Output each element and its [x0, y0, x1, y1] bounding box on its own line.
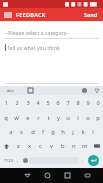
- button[interactable]: Emoji: [21, 153, 29, 168]
- staticText: 4: [36, 99, 40, 107]
- button[interactable]: Comma: [15, 153, 21, 168]
- staticText: u: [66, 114, 70, 122]
- button[interactable]: --Please select a category--: [5, 26, 98, 38]
- button[interactable]: p: [93, 110, 103, 125]
- button[interactable]: x: [24, 139, 35, 153]
- button[interactable]: 7: [63, 95, 73, 110]
- button[interactable]: m: [79, 139, 90, 153]
- staticText: 1: [4, 99, 8, 107]
- button[interactable]: y: [53, 110, 63, 125]
- staticText: j: [72, 128, 74, 136]
- button[interactable]: Home: [37, 168, 57, 183]
- button[interactable]: Open navigation menu: [0, 8, 16, 21]
- button[interactable]: s: [16, 125, 27, 139]
- staticText: ,: [17, 157, 19, 164]
- staticText: 7: [66, 99, 70, 107]
- staticText: Tell us what you think: [7, 44, 60, 51]
- button[interactable]: Recent apps: [57, 168, 77, 183]
- staticText: e: [26, 114, 30, 122]
- staticText: z: [17, 142, 20, 150]
- staticText: --Please select a category--: [5, 29, 70, 36]
- button[interactable]: c: [35, 139, 46, 153]
- staticText: b: [61, 142, 65, 150]
- staticText: .: [82, 157, 84, 164]
- staticText: FEEDBACK: [16, 11, 79, 18]
- staticText: s: [20, 128, 23, 136]
- button[interactable]: Back: [17, 168, 37, 183]
- staticText: 0: [96, 99, 100, 107]
- staticText: h: [61, 128, 65, 136]
- button[interactable]: ?123: [2, 153, 15, 168]
- button[interactable]: k: [78, 125, 88, 139]
- button[interactable]: z: [13, 139, 24, 153]
- staticText: 3: [26, 99, 30, 107]
- staticText: x: [28, 142, 32, 150]
- button[interactable]: Shift: [0, 139, 13, 153]
- button[interactable]: r: [33, 110, 43, 125]
- button[interactable]: a: [5, 125, 16, 139]
- button[interactable]: Switch keyboard: [77, 168, 97, 183]
- staticText: v: [50, 142, 53, 150]
- staticText: 6: [56, 99, 60, 107]
- button[interactable]: 8: [73, 95, 83, 110]
- staticText: f: [42, 128, 44, 136]
- staticText: r: [37, 114, 40, 122]
- button[interactable]: j: [68, 125, 78, 139]
- button[interactable]: Send: [79, 8, 103, 21]
- staticText: 2: [15, 99, 19, 107]
- button[interactable]: d: [27, 125, 38, 139]
- button[interactable]: w: [11, 110, 22, 125]
- staticText: g: [51, 128, 55, 136]
- button[interactable]: u: [63, 110, 73, 125]
- staticText: l: [92, 128, 94, 136]
- staticText: y: [57, 114, 60, 122]
- staticText: n: [72, 142, 76, 150]
- button[interactable]: Translate: [20, 86, 40, 95]
- staticText: o: [86, 114, 90, 122]
- staticText: k: [81, 128, 85, 136]
- button[interactable]: 1: [0, 95, 11, 110]
- button[interactable]: 3: [22, 95, 33, 110]
- button[interactable]: t: [43, 110, 53, 125]
- staticText: p: [96, 114, 100, 122]
- staticText: 8: [76, 99, 80, 107]
- staticText: a: [9, 128, 13, 136]
- button[interactable]: Enter: [86, 153, 101, 168]
- button[interactable]: Period: [79, 153, 86, 168]
- staticText: c: [39, 142, 42, 150]
- button[interactable]: abc: [0, 86, 20, 95]
- button[interactable]: 6: [53, 95, 63, 110]
- button[interactable]: q: [0, 110, 11, 125]
- staticText: q: [4, 114, 8, 122]
- staticText: abc: [7, 88, 14, 94]
- staticText: d: [31, 128, 35, 136]
- button[interactable]: 9: [83, 95, 93, 110]
- button[interactable]: 4: [33, 95, 43, 110]
- staticText: ?123: [4, 158, 14, 164]
- staticText: m: [82, 142, 88, 150]
- button[interactable]: h: [58, 125, 68, 139]
- button[interactable]: v: [46, 139, 57, 153]
- button[interactable]: n: [68, 139, 79, 153]
- button[interactable]: Tell us what you think: [5, 42, 98, 52]
- staticText: 5: [46, 99, 50, 107]
- staticText: Send: [84, 11, 98, 18]
- button[interactable]: o: [83, 110, 93, 125]
- staticText: w: [14, 114, 19, 122]
- staticText: 9: [86, 99, 90, 107]
- button[interactable]: 5: [43, 95, 53, 110]
- button[interactable]: 2: [11, 95, 22, 110]
- button[interactable]: g: [48, 125, 58, 139]
- staticText: i: [77, 114, 79, 122]
- button[interactable]: i: [73, 110, 83, 125]
- button[interactable]: Hide keyboard: [91, 86, 103, 95]
- button[interactable]: Keyboard settings: [77, 86, 91, 95]
- button[interactable]: 0: [93, 95, 103, 110]
- button[interactable]: e: [22, 110, 33, 125]
- staticText: t: [47, 114, 50, 122]
- button[interactable]: f: [38, 125, 48, 139]
- button[interactable]: Backspace: [90, 139, 103, 153]
- button[interactable]: l: [88, 125, 98, 139]
- button[interactable]: b: [57, 139, 68, 153]
